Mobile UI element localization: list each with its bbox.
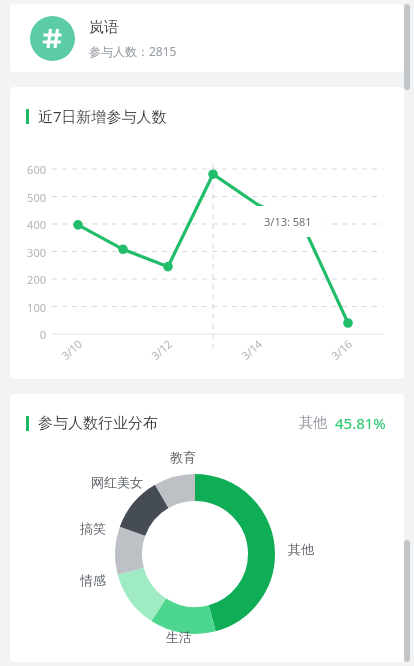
staticText: 3/16 <box>328 336 355 363</box>
staticText: 近7日新增参与人数 <box>38 106 167 126</box>
staticText: 400 <box>14 217 46 232</box>
staticText: 搞笑 <box>80 520 106 536</box>
staticText: 教育 <box>170 449 196 465</box>
staticText: 3/14 <box>238 336 265 363</box>
staticText: 0 <box>14 327 46 342</box>
staticText: 3/13: 581 <box>264 214 312 229</box>
staticText: 网红美女 <box>91 474 143 490</box>
staticText: 300 <box>14 245 46 260</box>
staticText: 岚语 <box>89 18 119 37</box>
staticText: 500 <box>14 190 46 205</box>
other: Topic avatar <box>30 16 75 61</box>
staticText: 参与人数行业分布 <box>38 414 158 433</box>
staticText: 生活 <box>166 629 192 645</box>
staticText: 3/12 <box>148 336 175 363</box>
staticText: 参与人数：2815 <box>89 43 177 59</box>
staticText: 情感 <box>80 572 106 588</box>
button[interactable]: Topic avatar <box>10 4 404 72</box>
staticText: 45.81% <box>335 413 386 433</box>
staticText: 其他 <box>288 541 314 557</box>
staticText: 其他 <box>299 414 327 432</box>
staticText: 3/10 <box>58 336 85 363</box>
staticText: 600 <box>14 162 46 177</box>
staticText: 200 <box>14 272 46 287</box>
staticText: 100 <box>14 300 46 315</box>
